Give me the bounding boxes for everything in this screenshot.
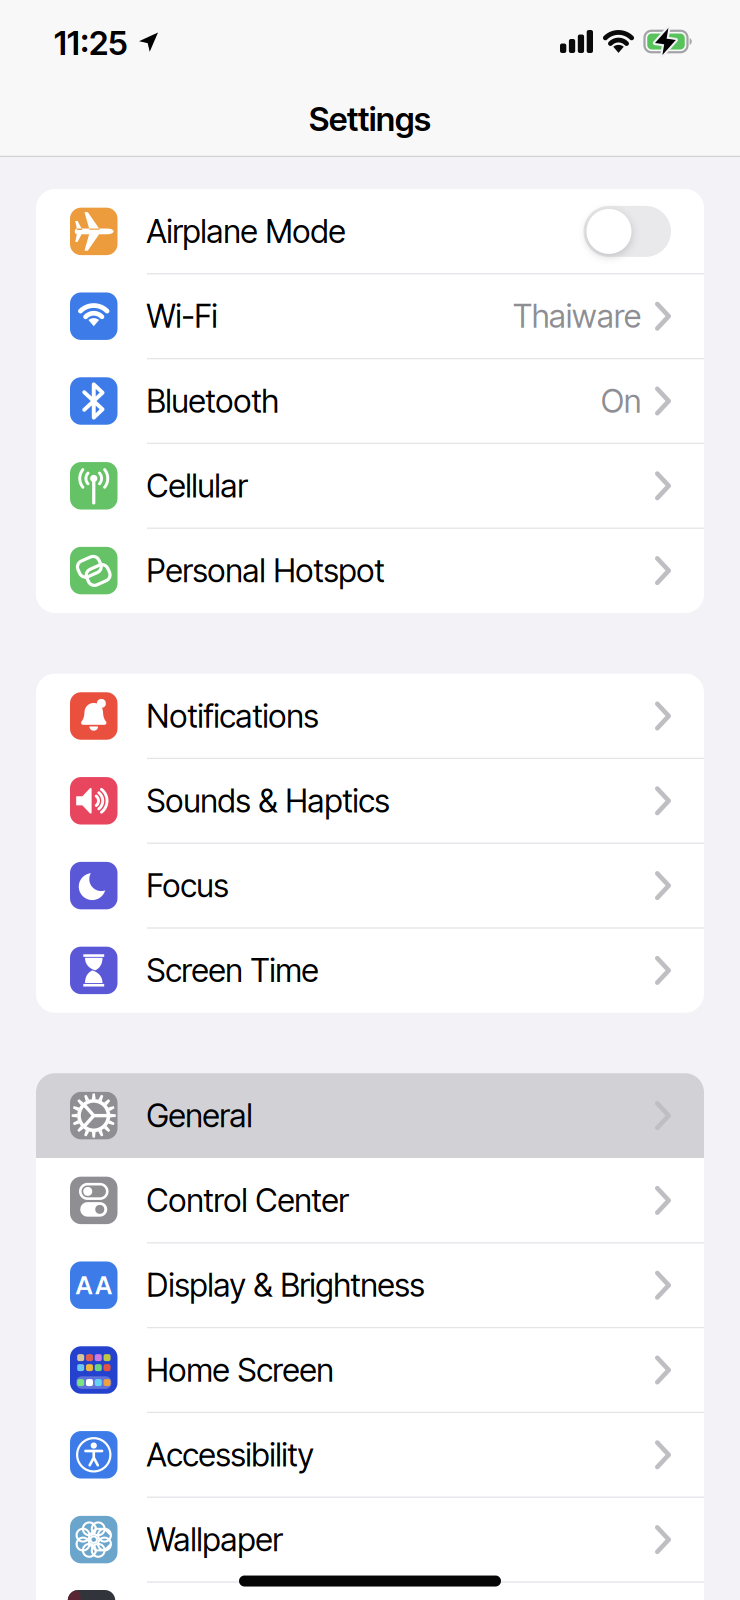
button[interactable]: Personal Hotspot — [36, 528, 704, 613]
staticText: Airplane Mode — [146, 212, 345, 250]
button[interactable]: Home Screen — [36, 1328, 704, 1412]
button[interactable]: General — [36, 1073, 704, 1158]
button[interactable]: Control Center — [36, 1158, 704, 1243]
button[interactable]: Airplane Mode — [36, 189, 704, 274]
staticText: Screen Time — [146, 951, 318, 989]
staticText: On — [601, 382, 641, 420]
staticText: Bluetooth — [146, 382, 278, 420]
staticText: Wi-Fi — [146, 297, 217, 335]
button[interactable]: Wi-Fi — [36, 274, 704, 359]
button[interactable]: Sounds & Haptics — [36, 758, 704, 843]
staticText: General — [146, 1097, 252, 1134]
staticText: Cellular — [146, 467, 247, 505]
staticText: Home Screen — [146, 1351, 333, 1389]
staticText: Personal Hotspot — [146, 552, 384, 589]
staticText: 11:25 — [54, 23, 128, 62]
button[interactable]: Notifications — [36, 674, 704, 758]
button[interactable]: Focus — [36, 843, 704, 928]
staticText: Notifications — [146, 697, 318, 735]
staticText: Accessibility — [146, 1436, 313, 1474]
button[interactable]: Wallpaper — [36, 1497, 704, 1582]
button[interactable]: Cellular — [36, 443, 704, 528]
staticText: Settings — [309, 99, 431, 138]
button[interactable]: Accessibility — [36, 1412, 704, 1497]
staticText: Display & Brightness — [146, 1266, 424, 1304]
staticText: A — [95, 1270, 112, 1300]
staticText: Sounds & Haptics — [146, 782, 389, 820]
staticText: Thaiware — [513, 297, 641, 335]
button[interactable]: A — [36, 1243, 704, 1328]
staticText: A — [75, 1270, 92, 1300]
button[interactable]: Screen Time — [36, 928, 704, 1013]
staticText: Wallpaper — [146, 1521, 282, 1558]
staticText: Focus — [146, 867, 228, 904]
button[interactable]: Bluetooth — [36, 359, 704, 443]
staticText: Control Center — [146, 1181, 348, 1219]
